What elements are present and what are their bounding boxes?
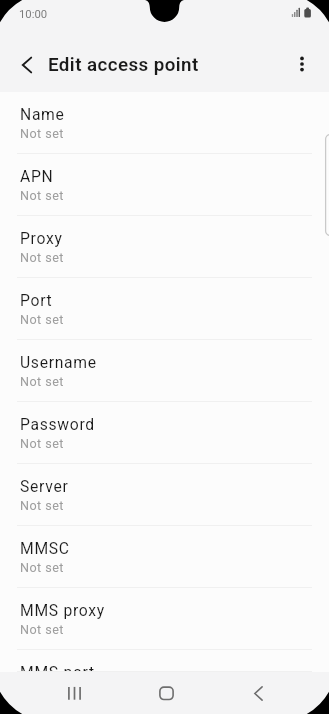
staticText: Not set [20, 498, 64, 513]
button[interactable]: APN [0, 154, 329, 216]
button[interactable]: Navigate up [5, 43, 49, 87]
staticText: APN [20, 167, 54, 185]
staticText: Name [20, 105, 65, 123]
button[interactable]: Proxy [0, 216, 329, 278]
button[interactable]: More options [280, 42, 324, 86]
button[interactable]: Password [0, 402, 329, 464]
staticText: Port [20, 291, 53, 309]
staticText: Not set [20, 250, 64, 265]
staticText: Edit access point [48, 54, 199, 76]
button[interactable]: MMS port [0, 650, 329, 672]
staticText: Not set [20, 436, 64, 451]
button[interactable]: Home [144, 672, 189, 714]
button[interactable]: Username [0, 340, 329, 402]
button[interactable]: Recent apps [52, 672, 97, 714]
staticText: MMS port [20, 663, 95, 672]
button[interactable]: Name [0, 92, 329, 154]
staticText: 10:00 [19, 8, 48, 21]
staticText: Not set [20, 188, 64, 203]
staticText: Not set [20, 560, 64, 575]
button[interactable]: Port [0, 278, 329, 340]
staticText: Proxy [20, 229, 63, 247]
button[interactable]: Server [0, 464, 329, 526]
button[interactable]: MMSC [0, 526, 329, 588]
staticText: Not set [20, 126, 64, 141]
staticText: Password [20, 415, 95, 433]
button[interactable]: Back [236, 672, 281, 714]
staticText: MMSC [20, 539, 70, 557]
button[interactable]: MMS proxy [0, 588, 329, 650]
staticText: Not set [20, 312, 64, 327]
staticText: MMS proxy [20, 601, 105, 619]
staticText: Server [20, 477, 69, 495]
staticText: Not set [20, 374, 64, 389]
staticText: Username [20, 353, 97, 371]
staticText: Not set [20, 622, 64, 637]
